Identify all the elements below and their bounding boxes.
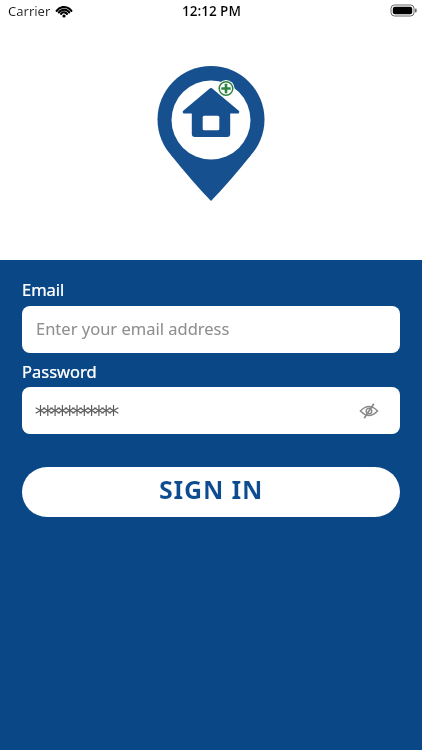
button[interactable]: Enter your email address [22, 306, 400, 353]
button[interactable] [22, 387, 400, 434]
staticText: Password [22, 360, 97, 382]
staticText: Carrier [8, 2, 51, 20]
staticText: SIGN IN [159, 472, 264, 506]
staticText: Email [22, 278, 65, 300]
button[interactable]: SIGN IN [22, 467, 400, 517]
staticText: Enter your email address [36, 317, 230, 339]
staticText: 12:12 PM [182, 2, 241, 20]
